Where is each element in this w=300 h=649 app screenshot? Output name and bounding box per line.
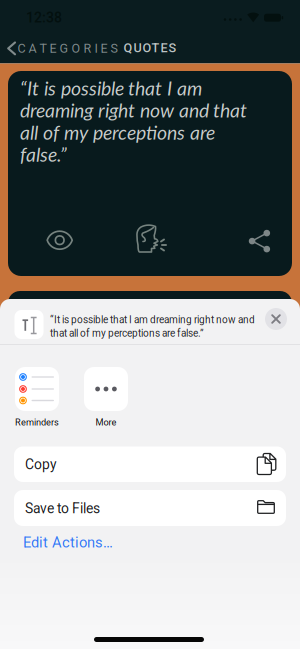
button[interactable]: Copy [14, 446, 286, 482]
staticText: Edit Actions… [23, 534, 113, 551]
button[interactable]: Speak [131, 222, 167, 256]
button[interactable]: Edit Actions… [23, 534, 113, 551]
button[interactable]: More [84, 367, 128, 428]
button[interactable]: Share [248, 229, 270, 251]
staticText: C A T E G O R I E S [17, 41, 117, 56]
staticText: QUOTES [123, 40, 176, 55]
staticText: “It is possible that I am dreaming right… [50, 313, 255, 340]
staticText: 12:38 [26, 9, 62, 26]
staticText: Copy [25, 456, 57, 473]
button[interactable]: C A T E G O R I E S [7, 41, 117, 56]
button[interactable]: Reminders [15, 367, 59, 428]
staticText: Reminders [15, 417, 59, 428]
staticText: More [95, 417, 116, 428]
button[interactable]: Save to Files [14, 490, 286, 526]
button[interactable]: View [46, 229, 74, 251]
button[interactable]: Close [265, 308, 287, 330]
staticText: “It is possible that I am dreaming right… [20, 77, 247, 165]
staticText: Save to Files [25, 500, 100, 517]
